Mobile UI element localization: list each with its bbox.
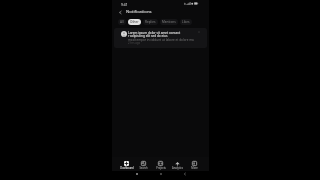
staticText: Dashboard (120, 166, 134, 170)
staticText: Analytics (172, 166, 183, 170)
staticText: 9:41 (121, 2, 128, 6)
button[interactable]: Other (128, 19, 141, 25)
staticText: All (120, 20, 124, 24)
button[interactable]: Home (157, 170, 164, 177)
button[interactable]: Back (117, 9, 123, 15)
button[interactable]: Search (135, 158, 152, 172)
button[interactable]: Replies (143, 19, 158, 25)
staticText: Likes (182, 20, 190, 24)
staticText: More (191, 166, 198, 170)
button[interactable]: Lorem ipsum dolor sit amet consect (114, 28, 207, 48)
staticText: Search (139, 166, 148, 170)
staticText: r adipiscing elit sed do eius (128, 34, 168, 38)
staticText: Lorem ipsum dolor sit amet consect (128, 31, 181, 35)
staticText: Notifications (126, 9, 152, 15)
staticText: Mentions (162, 20, 176, 24)
button[interactable]: Likes (180, 19, 192, 25)
button[interactable]: All (118, 19, 126, 25)
button[interactable]: Projects (152, 158, 169, 172)
button[interactable]: Mentions (160, 19, 178, 25)
staticText: Projects (156, 166, 166, 170)
staticText: 2 hrs ago (128, 41, 141, 45)
button[interactable]: More options (197, 31, 201, 35)
staticText: Other (130, 20, 139, 24)
button[interactable]: Back (181, 170, 188, 177)
button[interactable]: Analytics (169, 158, 186, 172)
staticText: mod tempor incididunt ut labore et dolor… (128, 38, 194, 42)
button[interactable]: Recent apps (133, 170, 140, 177)
button[interactable]: More (186, 158, 203, 172)
button[interactable]: Dashboard (118, 158, 135, 172)
staticText: Replies (145, 20, 156, 24)
